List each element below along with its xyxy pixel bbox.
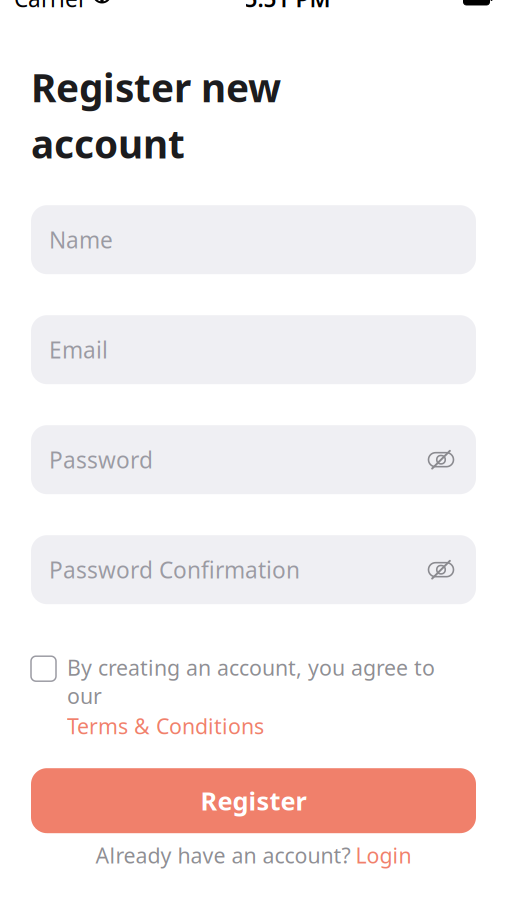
staticText: Register	[200, 784, 306, 817]
button[interactable]: Register	[31, 768, 476, 833]
button[interactable]: Show Password Confirmation	[428, 557, 454, 583]
staticText: Terms & Conditions	[67, 712, 264, 740]
staticText: Password Confirmation	[49, 555, 300, 585]
staticText: Name	[49, 225, 113, 255]
staticText: Password	[49, 445, 153, 475]
staticText: Register new	[31, 61, 281, 113]
staticText: 5:51 PM	[244, 0, 330, 13]
button[interactable]: By creating an account, you agree to our	[0, 653, 507, 740]
button[interactable]: Show Password	[428, 447, 454, 473]
staticText: Email	[49, 335, 108, 365]
staticText: account	[31, 118, 185, 169]
staticText: By creating an account, you agree to our	[67, 653, 435, 710]
staticText: Already have an account?	[95, 841, 350, 869]
staticText: Login	[355, 841, 411, 869]
button[interactable]: Already have an account?	[75, 833, 431, 877]
staticText: Carrier	[14, 0, 87, 13]
